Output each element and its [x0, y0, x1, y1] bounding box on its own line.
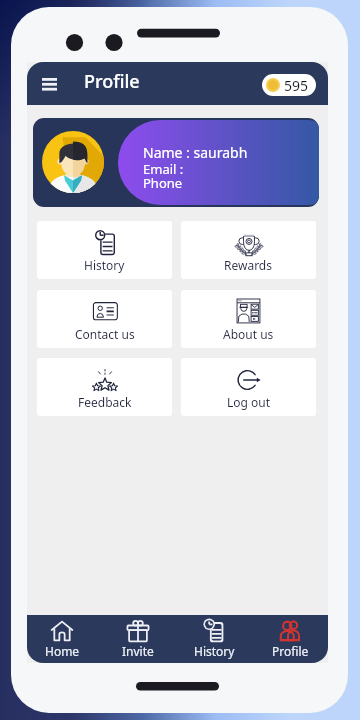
staticText: History	[84, 257, 125, 273]
button[interactable]: About us	[181, 290, 316, 348]
button[interactable]: Coin balance 595	[262, 74, 316, 96]
button[interactable]: Rewards	[181, 221, 316, 279]
staticText: Email :	[143, 160, 184, 178]
staticText: About us	[223, 326, 274, 342]
staticText: Invite	[122, 643, 154, 659]
button[interactable]: Open navigation menu	[30, 65, 68, 103]
staticText: 595	[284, 76, 309, 95]
button[interactable]: Feedback	[37, 358, 172, 416]
staticText: Profile	[84, 69, 140, 94]
button[interactable]: History	[37, 221, 172, 279]
staticText: Phone	[143, 174, 183, 192]
staticText: Profile	[272, 643, 309, 659]
button[interactable]: History	[177, 615, 251, 663]
staticText: Contact us	[75, 326, 135, 342]
button[interactable]: Invite	[101, 615, 175, 663]
button[interactable]: Contact us	[37, 290, 172, 348]
staticText: Log out	[227, 394, 271, 410]
staticText: History	[194, 643, 235, 659]
staticText: Feedback	[78, 394, 132, 410]
button[interactable]: Name : saurabh	[33, 118, 319, 207]
button[interactable]: Home	[27, 615, 99, 663]
staticText: Name : saurabh	[143, 143, 248, 162]
staticText: Home	[45, 643, 80, 659]
staticText: Rewards	[224, 257, 273, 273]
button[interactable]: Profile	[253, 615, 327, 663]
button[interactable]: Log out	[181, 358, 316, 416]
